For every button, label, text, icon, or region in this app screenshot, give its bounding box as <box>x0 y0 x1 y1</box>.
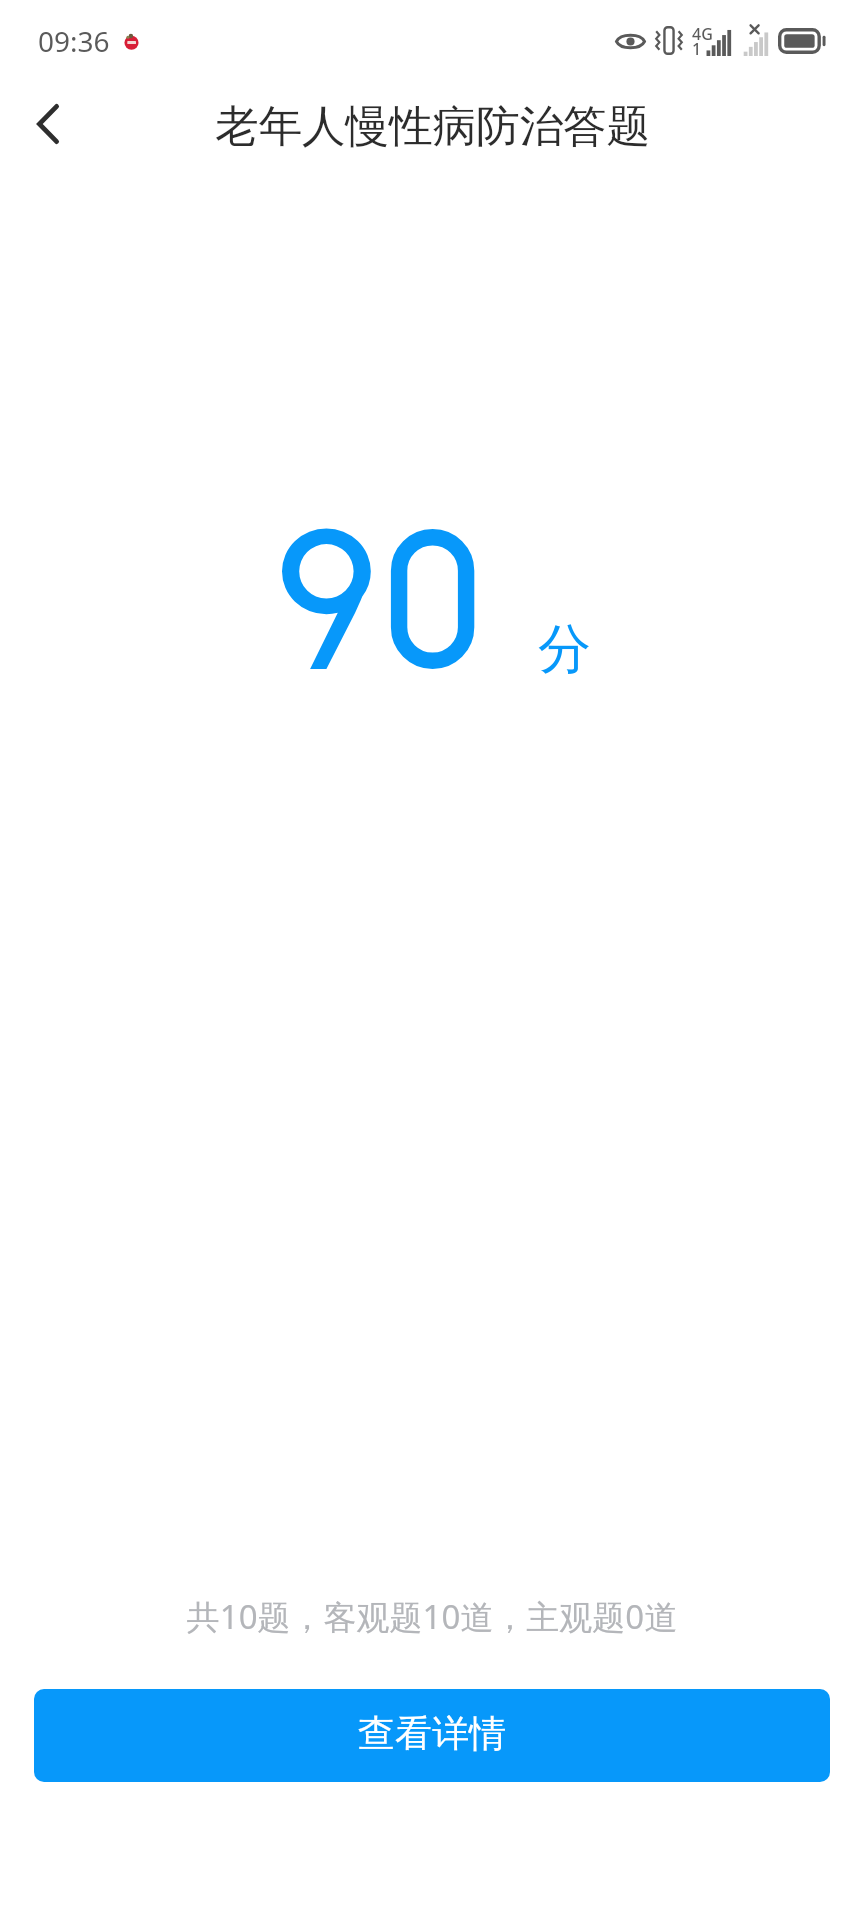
staticText: 1 <box>692 38 702 60</box>
button[interactable]: Back <box>4 90 92 158</box>
staticText: 共10题，客观题10道，主观题0道 <box>0 1594 864 1639</box>
staticText: 老年人慢性病防治答题 <box>215 99 650 154</box>
staticText: 09:36 <box>38 22 110 60</box>
staticText: 查看详情 <box>358 1710 506 1757</box>
staticText: 分 <box>538 616 591 683</box>
staticText: 4G <box>692 23 713 45</box>
button[interactable]: 查看详情 <box>34 1689 830 1782</box>
